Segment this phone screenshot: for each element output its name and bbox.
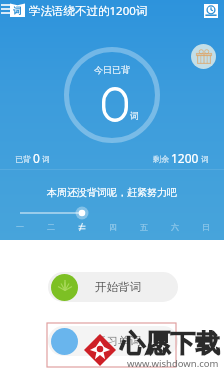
staticText: 词	[42, 154, 50, 164]
staticText: 今日已背	[94, 64, 130, 75]
staticText: 复习单词	[95, 334, 141, 348]
button[interactable]: Gift	[191, 44, 216, 69]
staticText: 二	[47, 222, 55, 232]
staticText: 学法语绕不过的1200词	[29, 3, 148, 19]
staticText: 已背	[15, 154, 31, 164]
button[interactable]: 复习单词	[48, 326, 178, 356]
staticText: 一	[16, 222, 24, 232]
staticText: 心愿下载	[120, 328, 220, 359]
staticText: 剩余	[153, 154, 169, 164]
staticText: 五	[140, 222, 148, 232]
staticText: 本周还没背词呢，赶紧努力吧	[47, 186, 177, 199]
button[interactable]: History	[203, 3, 218, 18]
staticText: 词	[13, 6, 22, 17]
staticText: 日	[202, 222, 210, 232]
staticText: 词	[130, 110, 139, 121]
staticText: 1200	[171, 150, 199, 166]
staticText: 0	[33, 150, 40, 166]
staticText: 四	[109, 222, 117, 232]
staticText: 六	[171, 222, 179, 232]
staticText: 词	[201, 154, 209, 164]
staticText: www.wishdown.com	[127, 357, 219, 370]
staticText: 开始背词	[95, 280, 141, 294]
button[interactable]: 开始背词	[48, 272, 178, 302]
button[interactable]: Menu	[0, 0, 15, 18]
